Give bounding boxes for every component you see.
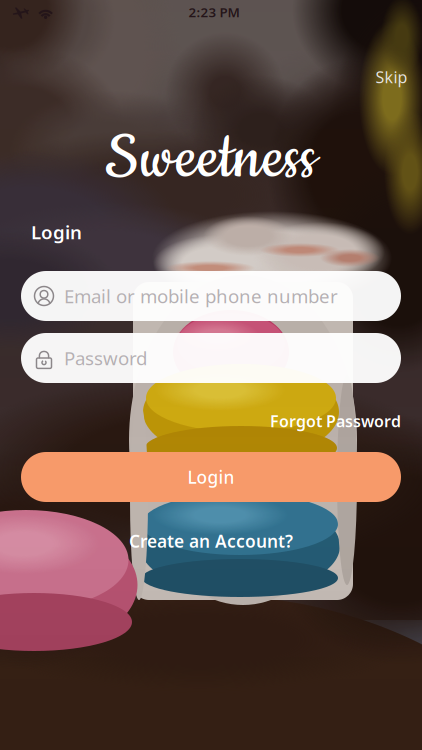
staticText: Forgot Password bbox=[270, 410, 401, 432]
staticText: Password bbox=[64, 346, 147, 370]
button[interactable]: Email or mobile phone number bbox=[21, 271, 401, 321]
staticText: Email or mobile phone number bbox=[64, 284, 338, 308]
button[interactable]: Forgot Password bbox=[251, 406, 401, 436]
staticText: Create an Account? bbox=[129, 529, 293, 552]
staticText: Login bbox=[31, 220, 82, 244]
staticText: Skip bbox=[375, 66, 407, 88]
staticText: Sweetness bbox=[105, 118, 317, 200]
staticText: 2:23 PM bbox=[188, 3, 239, 21]
button[interactable]: Skip bbox=[369, 62, 414, 92]
button[interactable]: Password bbox=[21, 333, 401, 383]
button[interactable]: Login bbox=[21, 452, 401, 502]
staticText: Login bbox=[187, 465, 234, 488]
button[interactable]: Create an Account? bbox=[111, 528, 311, 554]
